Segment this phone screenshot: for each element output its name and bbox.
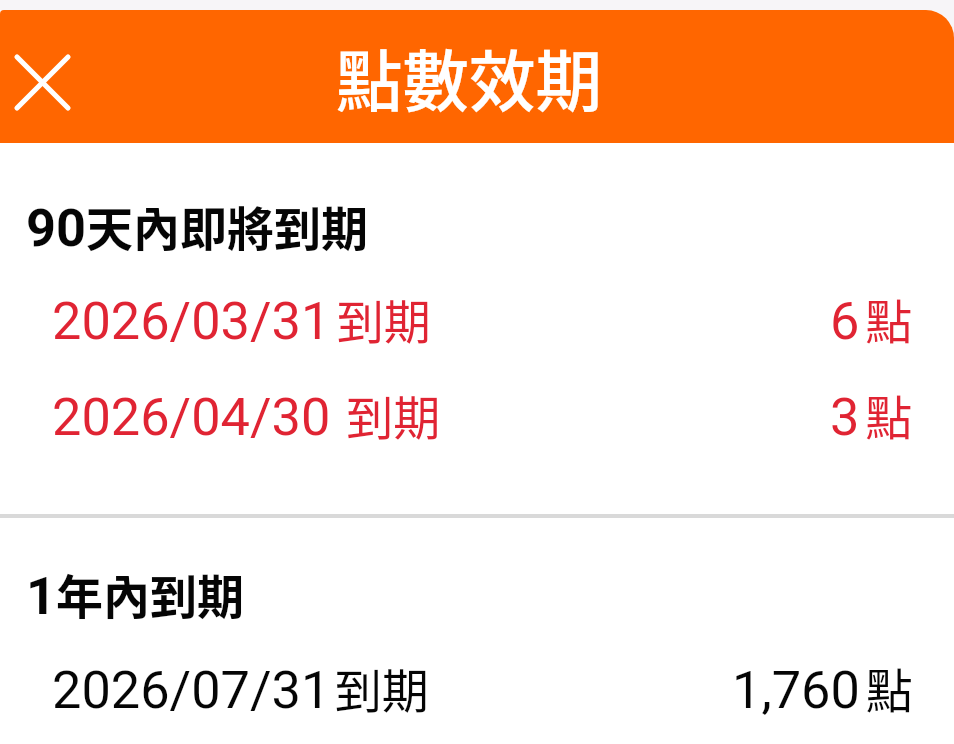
staticText: 2026/03/31 到期 xyxy=(52,284,431,352)
staticText: 2026/04/30 到期 xyxy=(52,380,441,448)
button[interactable]: Close xyxy=(6,46,78,118)
staticText: 1年內到期 xyxy=(26,559,245,627)
staticText: 1,760 點 xyxy=(732,653,913,721)
button[interactable]: 2026/04/30 到期 xyxy=(0,380,954,452)
staticText: 2026/07/31 到期 xyxy=(52,653,429,721)
staticText: 點數效期 xyxy=(336,29,602,125)
button[interactable]: 2026/07/31 到期 xyxy=(0,653,954,725)
staticText: 6 點 xyxy=(830,284,913,352)
staticText: 90天內即將到期 xyxy=(26,191,369,259)
staticText: 3 點 xyxy=(830,380,913,448)
button[interactable]: 2026/03/31 到期 xyxy=(0,284,954,356)
